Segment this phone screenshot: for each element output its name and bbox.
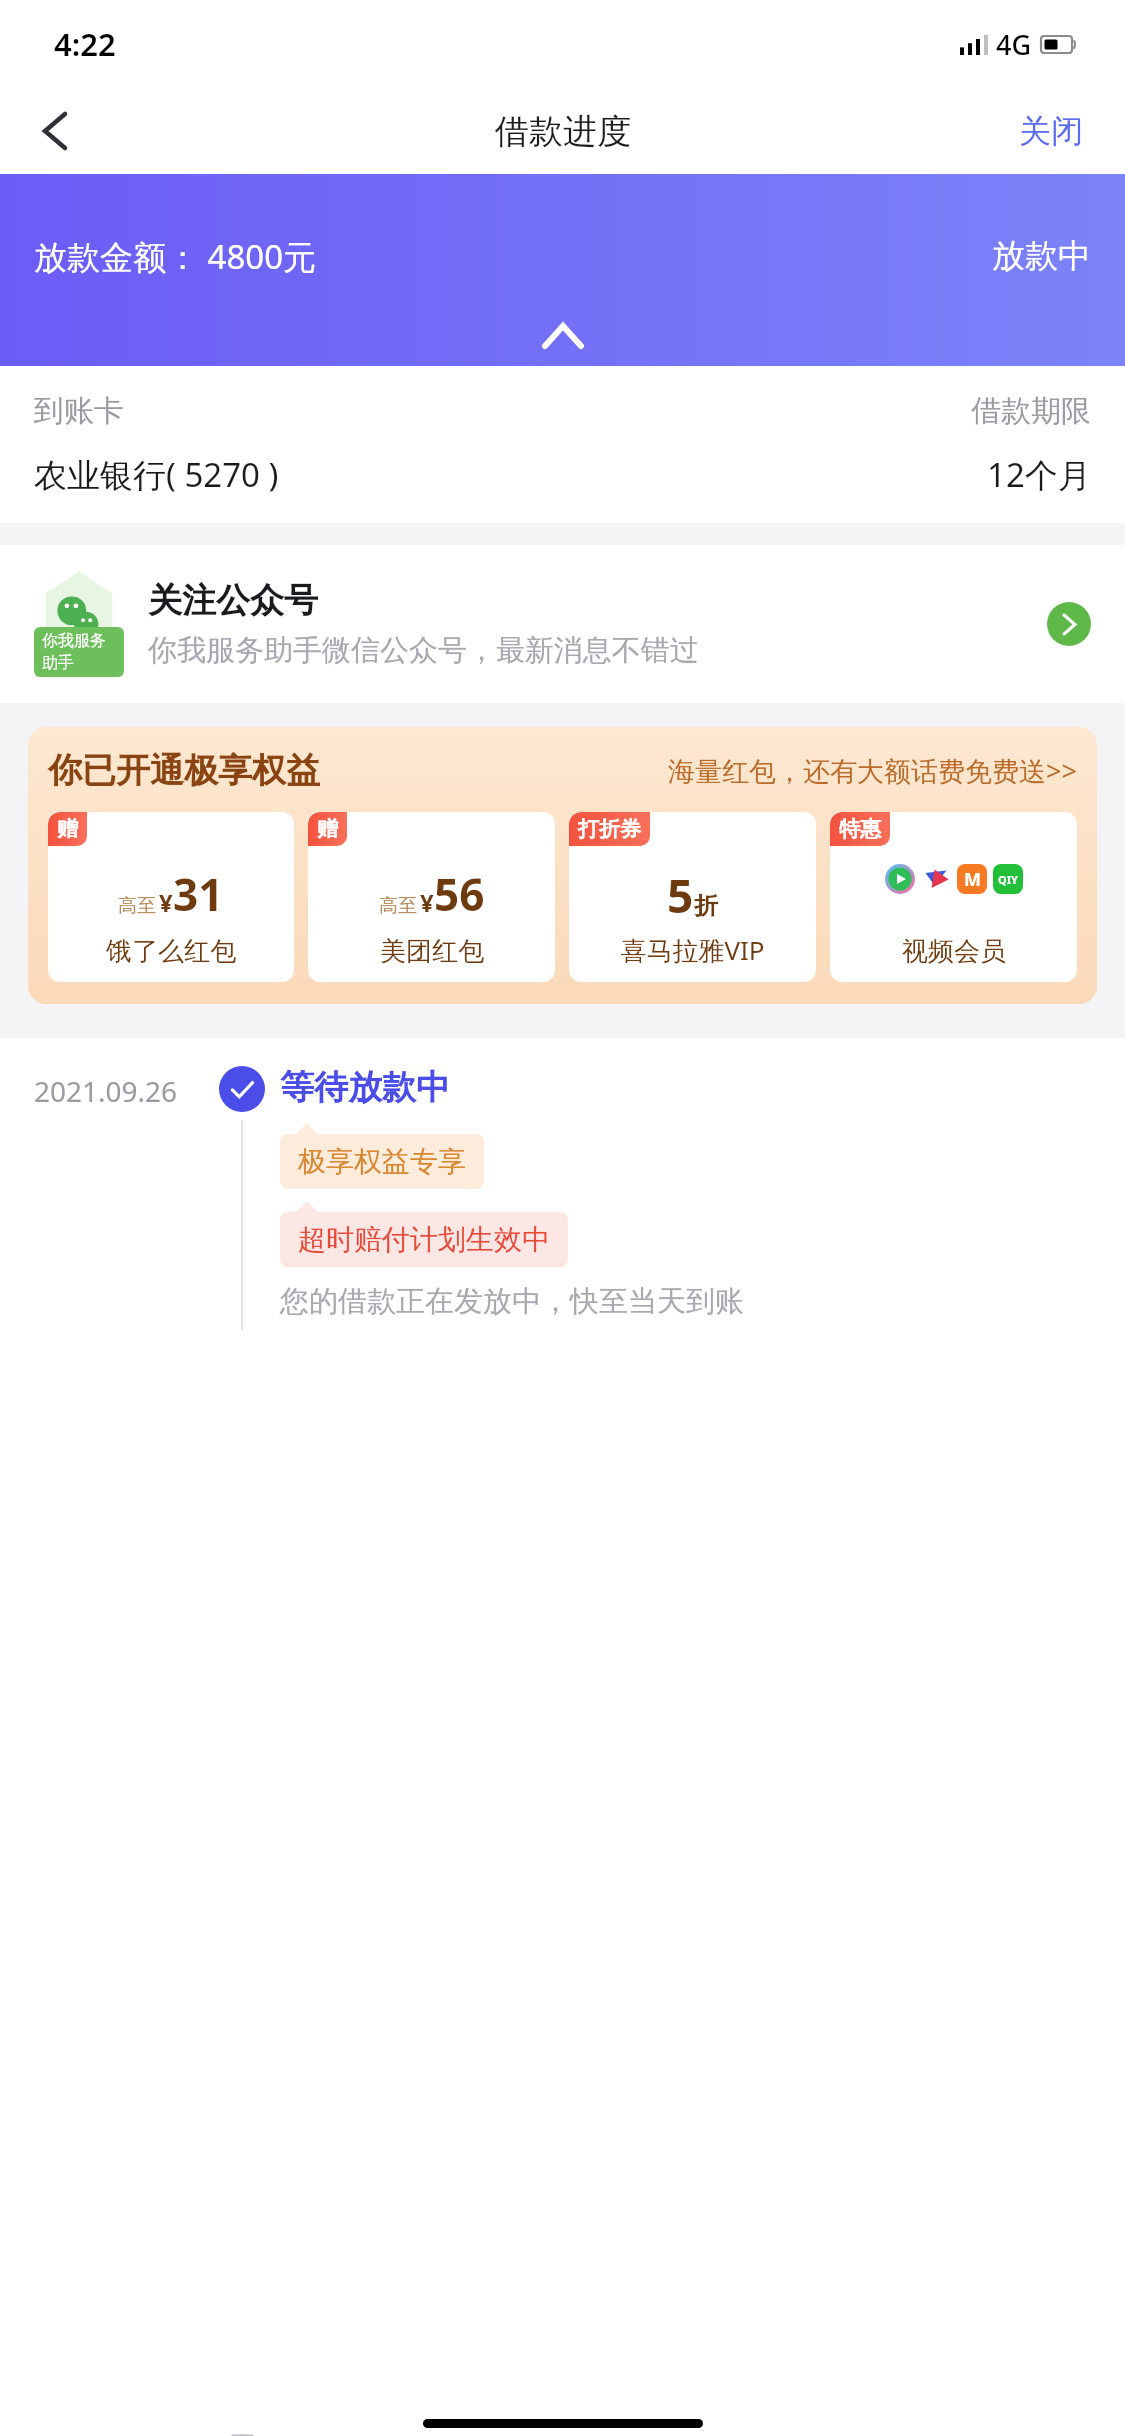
staticText: 饿了么红包 xyxy=(106,935,236,968)
button[interactable]: 你已开通极享权益 xyxy=(28,727,1097,1004)
button[interactable]: 特惠 xyxy=(830,812,1077,982)
staticText: 打折券 xyxy=(578,816,641,842)
button[interactable]: 赠 xyxy=(308,812,555,982)
staticText: 赠 xyxy=(317,816,338,842)
staticText: 56 xyxy=(434,864,485,924)
staticText: 4:22 xyxy=(54,23,116,65)
button[interactable]: 关闭 xyxy=(977,88,1125,174)
button[interactable]: 打折券 xyxy=(569,812,816,982)
staticText: 高至 xyxy=(118,894,156,918)
staticText: 借款进度 xyxy=(495,110,631,153)
staticText: ¥ xyxy=(159,886,173,919)
staticText: 您的借款正在发放中，快至当天到账 xyxy=(280,1283,744,1320)
button[interactable]: Back xyxy=(0,88,110,174)
staticText: 高至 xyxy=(379,894,417,918)
staticText: 放款中 xyxy=(992,235,1091,277)
staticText: 31 xyxy=(173,864,224,924)
staticText: 你我服务助手 xyxy=(42,631,116,673)
staticText: QIY xyxy=(998,872,1018,887)
staticText: 借款期限 xyxy=(971,392,1091,430)
staticText: 4G xyxy=(996,26,1032,63)
staticText: 赠 xyxy=(57,816,78,842)
staticText: 视频会员 xyxy=(902,935,1006,968)
staticText: 12个月 xyxy=(987,452,1091,497)
staticText: 农业银行( 5270 ) xyxy=(34,452,279,497)
staticText: 你已开通极享权益 xyxy=(48,749,320,792)
staticText: 2021.09.26 xyxy=(34,1072,204,1110)
staticText: 你我服务助手微信公众号，最新消息不错过 xyxy=(148,632,699,669)
staticText: 关注公众号 xyxy=(148,579,318,622)
staticText: 到账卡 xyxy=(34,392,124,430)
staticText: ¥ xyxy=(420,886,434,919)
staticText: 美团红包 xyxy=(380,935,484,968)
button[interactable]: 你我服务助手 xyxy=(0,545,1125,703)
button[interactable]: 赠 xyxy=(48,812,294,982)
staticText: 极享权益专享 xyxy=(298,1144,466,1179)
staticText: 5 xyxy=(667,864,694,927)
staticText: 特惠 xyxy=(839,816,881,842)
staticText: 喜马拉雅VIP xyxy=(620,932,765,968)
staticText: 放款金额： 4800元 xyxy=(34,234,317,279)
staticText: 海量红包，还有大额话费免费送>> xyxy=(668,752,1077,789)
button[interactable]: 2021.09.26 xyxy=(0,1066,1125,2436)
staticText: 关闭 xyxy=(1019,111,1083,151)
staticText: 折 xyxy=(694,891,718,921)
staticText: 超时赔付计划生效中 xyxy=(298,1222,550,1257)
staticText: M xyxy=(964,867,981,892)
staticText: 等待放款中 xyxy=(280,1066,450,1109)
button[interactable]: 放款金额： 4800元 xyxy=(0,174,1125,366)
